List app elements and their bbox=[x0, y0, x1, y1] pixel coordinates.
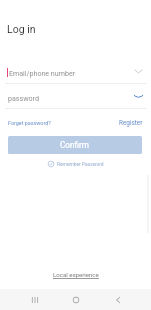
button[interactable]: Log in bbox=[7, 23, 36, 35]
staticText: Confirm bbox=[60, 140, 90, 150]
button[interactable]: Confirm bbox=[8, 136, 142, 154]
button[interactable]: Recent apps bbox=[20, 289, 49, 310]
other: Select account type bbox=[133, 66, 144, 77]
button[interactable]: Home bbox=[61, 289, 90, 310]
staticText: Register bbox=[119, 119, 143, 127]
staticText: password bbox=[8, 94, 39, 102]
other: Show password bbox=[133, 91, 144, 102]
button[interactable]: Back bbox=[103, 289, 132, 310]
button[interactable]: Register bbox=[118, 117, 144, 129]
button[interactable]: password bbox=[0, 89, 151, 108]
staticText: Forget password? bbox=[8, 120, 51, 126]
staticText: Log in bbox=[7, 23, 36, 35]
staticText: Remember Password bbox=[57, 161, 104, 167]
staticText: Email/phone number bbox=[9, 69, 76, 77]
button[interactable]: Email/phone number bbox=[0, 64, 151, 83]
button[interactable]: Local experience bbox=[51, 269, 101, 281]
button[interactable]: Forget password? bbox=[7, 118, 52, 128]
staticText: Local experience bbox=[53, 271, 99, 278]
button[interactable]: Remember Password bbox=[0, 158, 151, 169]
